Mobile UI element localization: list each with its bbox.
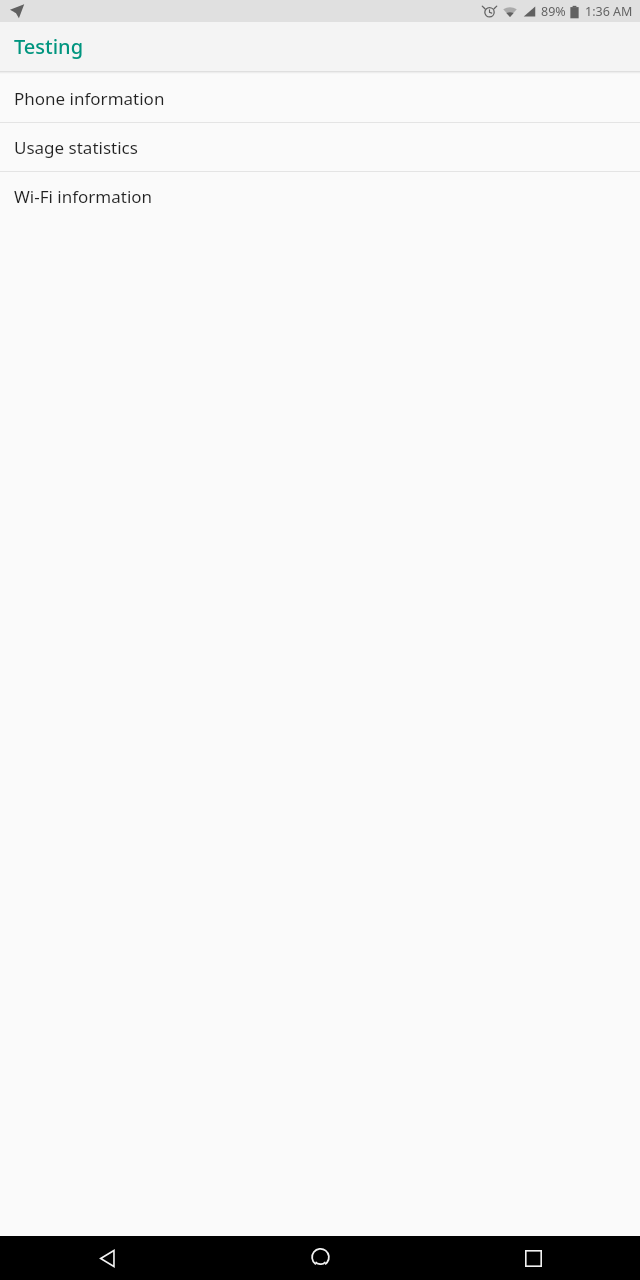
- button[interactable]: Recent apps: [427, 1236, 640, 1280]
- staticText: Usage statistics: [14, 136, 138, 159]
- button[interactable]: Phone information: [0, 74, 640, 122]
- button[interactable]: Wi-Fi information: [0, 172, 640, 220]
- button[interactable]: Home: [214, 1236, 427, 1280]
- staticText: Testing: [14, 33, 84, 60]
- button[interactable]: Usage statistics: [0, 123, 640, 171]
- staticText: Phone information: [14, 87, 165, 110]
- staticText: 1:36 AM: [585, 3, 633, 20]
- staticText: Wi-Fi information: [14, 185, 153, 208]
- button[interactable]: Back: [0, 1236, 214, 1280]
- staticText: 89%: [541, 3, 566, 20]
